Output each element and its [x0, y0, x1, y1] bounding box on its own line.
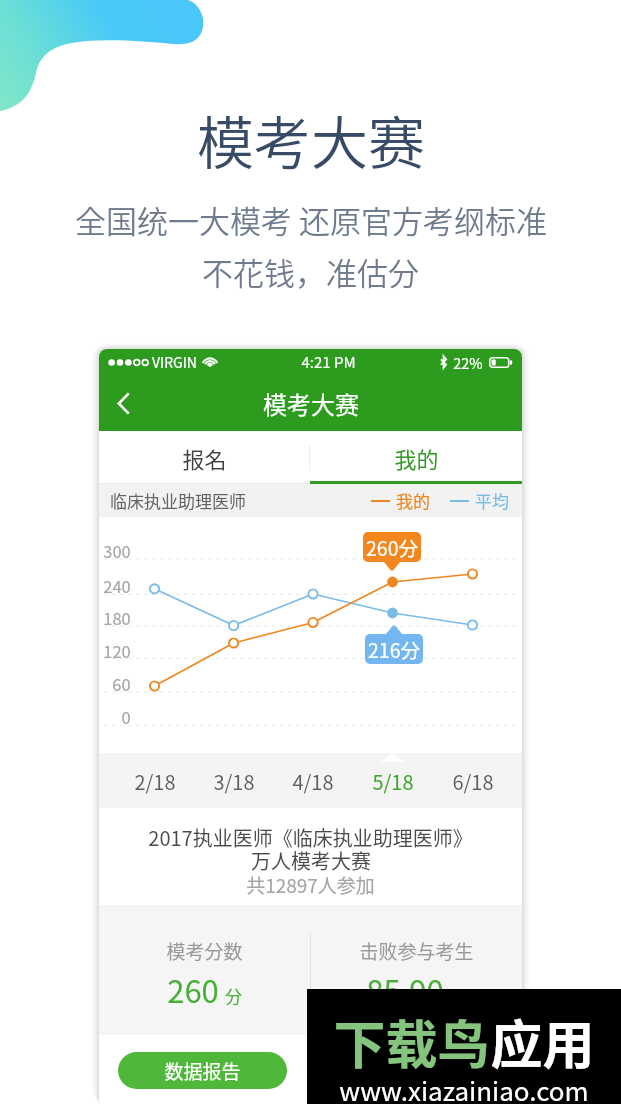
- button[interactable]: 2/18: [116, 766, 194, 796]
- staticText: 22%: [453, 352, 483, 373]
- staticText: 平均: [475, 488, 509, 513]
- staticText: 180: [103, 606, 131, 630]
- staticText: 3/18: [213, 767, 255, 796]
- staticText: 4/18: [292, 767, 334, 796]
- button[interactable]: 4/18: [274, 766, 352, 796]
- staticText: 分: [225, 983, 242, 1008]
- staticText: 不花钱，准估分: [202, 249, 419, 294]
- staticText: VIRGIN: [152, 352, 197, 372]
- staticText: 2/18: [134, 767, 176, 796]
- staticText: 120: [103, 639, 131, 663]
- staticText: 下载鸟: [333, 1004, 490, 1079]
- button[interactable]: 我的: [310, 431, 522, 484]
- staticText: 300: [103, 539, 131, 563]
- staticText: 临床执业助理医师: [110, 488, 246, 513]
- staticText: 万人模考大赛: [251, 846, 371, 875]
- button[interactable]: 数据报告: [118, 1052, 287, 1089]
- staticText: %: [450, 983, 466, 1008]
- staticText: 216分: [368, 635, 420, 663]
- staticText: 数据报告: [164, 1057, 241, 1085]
- staticText: 85.90: [366, 967, 444, 1012]
- staticText: 我的: [396, 488, 430, 513]
- staticText: 我的: [394, 442, 439, 474]
- button[interactable]: 6/18: [434, 766, 512, 796]
- staticText: 全国统一大模考 还原官方考纲标准: [75, 197, 547, 242]
- staticText: 共12897人参加: [246, 871, 375, 899]
- staticText: 报名: [182, 442, 227, 474]
- staticText: 模考大赛: [263, 386, 359, 421]
- button[interactable]: 5/18: [354, 766, 432, 796]
- staticText: 模考分数: [166, 937, 243, 965]
- button[interactable]: 3/18: [195, 766, 273, 796]
- staticText: 6/18: [452, 767, 494, 796]
- staticText: 2017执业医师《临床执业助理医师》: [148, 823, 473, 852]
- staticText: 260分: [366, 533, 418, 561]
- staticText: 4:21 PM: [301, 351, 356, 373]
- button[interactable]: 模考分数: [99, 905, 310, 1035]
- staticText: 0: [121, 705, 131, 729]
- staticText: 260: [167, 967, 219, 1012]
- staticText: 60: [112, 672, 131, 696]
- staticText: 5/18: [372, 767, 414, 796]
- button[interactable]: 报名: [99, 431, 310, 484]
- staticText: 应用: [490, 1004, 595, 1079]
- staticText: 击败参与考生: [359, 937, 474, 965]
- button[interactable]: Back: [103, 383, 143, 423]
- staticText: www.xiazainiao.com: [339, 1071, 589, 1104]
- button[interactable]: 击败参与考生: [310, 905, 522, 1035]
- staticText: 模考大赛: [197, 98, 425, 181]
- staticText: 240: [103, 574, 131, 598]
